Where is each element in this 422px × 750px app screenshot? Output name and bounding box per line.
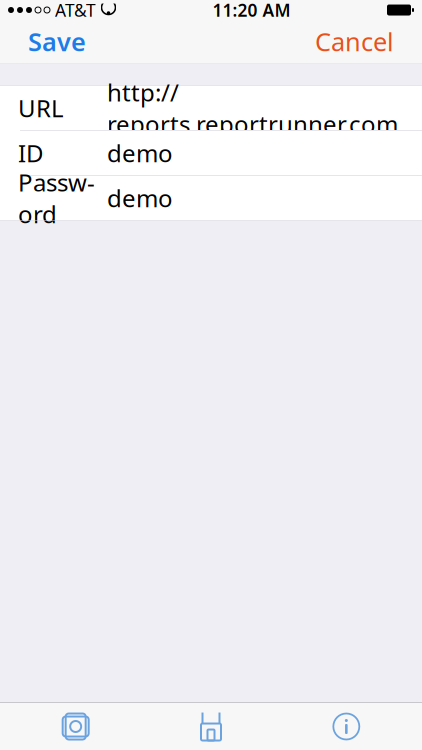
staticText: Save <box>28 25 86 58</box>
staticText: http://reports.reportrunner.com <box>107 76 398 140</box>
staticText: URL <box>18 92 64 124</box>
staticText: 11:20 AM <box>212 0 290 21</box>
button[interactable]: Info <box>279 703 414 749</box>
staticText: Password <box>18 166 95 230</box>
button[interactable]: URL <box>0 86 422 131</box>
button[interactable]: Save <box>18 17 96 66</box>
staticText: demo <box>107 182 173 214</box>
staticText: Cancel <box>315 25 394 58</box>
staticText: AT&T <box>55 0 96 21</box>
button[interactable]: Cancel <box>305 17 404 66</box>
button[interactable]: Home <box>143 703 279 749</box>
button[interactable]: Settings <box>8 703 143 749</box>
staticText: ID <box>18 137 44 169</box>
button[interactable]: ID <box>0 131 422 176</box>
staticText: demo <box>107 137 173 169</box>
button[interactable]: Password <box>0 176 422 220</box>
